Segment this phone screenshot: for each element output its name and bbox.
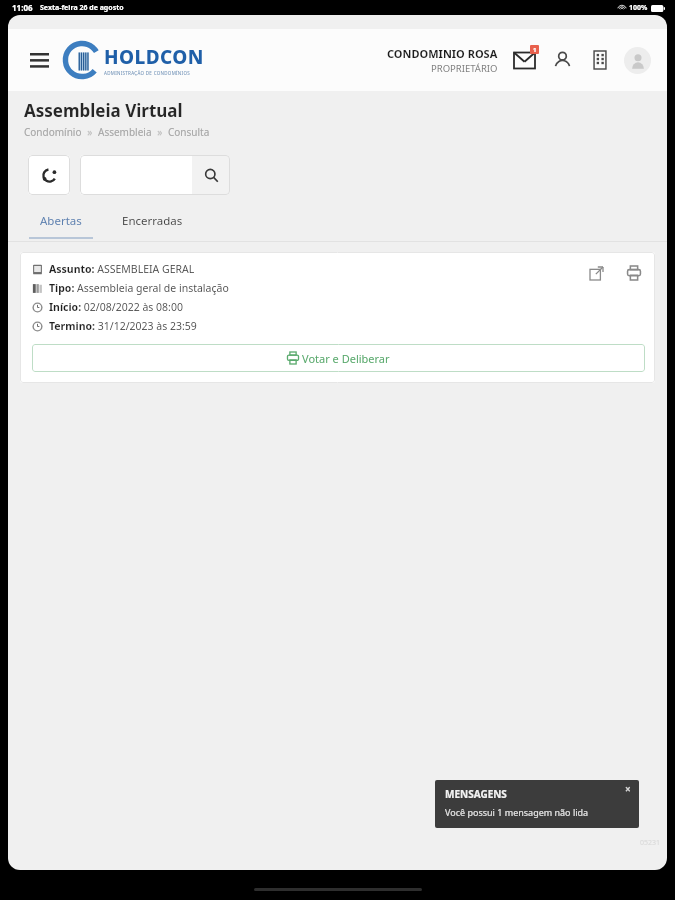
button[interactable]: Atualizar [28,155,70,195]
staticText: CONDOMINIO ROSA [387,46,498,61]
button[interactable]: Assunto: ASSEMBLEIA GERAL [20,252,655,383]
button[interactable]: MENSAGENS [435,780,639,828]
staticText: Tipo: Assembleia geral de instalação [49,281,229,295]
staticText: Condomínio [24,125,82,139]
staticText: HOLDCON [104,44,204,70]
staticText: × [625,782,631,794]
staticText: » [82,125,98,139]
button[interactable]: Menu [24,45,54,75]
staticText: Termino: 31/12/2023 às 23:59 [49,319,197,333]
staticText: Assembleia Virtual [24,99,183,122]
staticText: 100% [629,3,648,13]
staticText: Você possui 1 mensagem não lida [445,806,589,818]
button[interactable]: Perfil [548,46,576,74]
button[interactable]: Fechar [622,782,634,794]
staticText: Sexta-feira 26 de agosto [40,3,124,13]
button[interactable] [80,155,192,195]
button[interactable]: Pesquisar [192,155,230,195]
staticText: Votar e Deliberar [302,351,390,366]
button[interactable]: Abertas [28,209,94,239]
button[interactable]: Imprimir [623,262,645,284]
staticText: Assembleia [98,125,152,139]
staticText: Assunto: ASSEMBLEIA GERAL [49,262,195,276]
staticText: Abertas [40,213,82,229]
staticText: Consulta [168,125,210,139]
staticText: ADMINISTRAÇÃO DE CONDOMÍNIOS [104,70,190,76]
staticText: 1 [533,46,537,54]
staticText: Início: 02/08/2022 às 08:00 [49,300,183,314]
staticText: 05231 [640,838,661,848]
staticText: Encerradas [122,213,183,229]
staticText: PROPRIETÁRIO [431,62,498,75]
button[interactable]: Mensagens [510,46,538,74]
button[interactable]: Conta [624,47,651,74]
staticText: 11:06 [12,2,33,13]
button[interactable]: Votar e Deliberar [32,344,645,372]
button[interactable]: Condomínio [586,46,614,74]
staticText: » [152,125,168,139]
button[interactable]: Abrir [585,262,607,284]
button[interactable]: Encerradas [110,209,195,233]
staticText: MENSAGENS [445,787,507,801]
